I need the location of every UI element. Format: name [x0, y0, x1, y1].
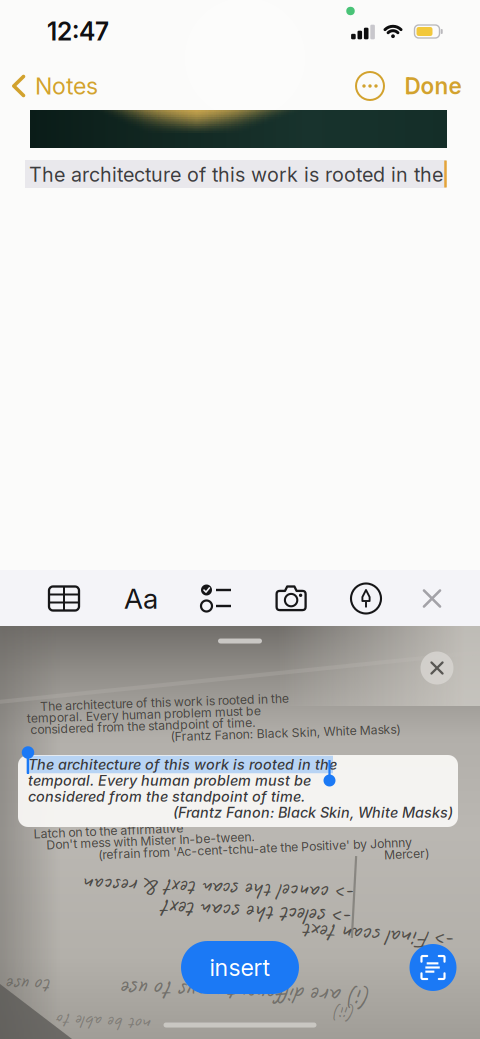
staticText: -> select the scan text: [163, 898, 353, 930]
staticText: Done: [404, 72, 461, 100]
staticText: The architecture of this work is rooted …: [29, 163, 443, 186]
staticText: (i) are different ways to use: [122, 977, 372, 1011]
staticText: temporal. Every human problem must be: [28, 772, 311, 789]
staticText: temporal. Every human problem must be: [27, 705, 261, 719]
staticText: (Frantz Fanon: Black Skin, White Masks): [170, 728, 400, 742]
button[interactable]: Scan text: [408, 942, 458, 992]
staticText: Latch on to the affirmative: [34, 819, 184, 833]
button[interactable]: Done: [398, 69, 468, 103]
staticText: 12:47: [47, 17, 109, 46]
button[interactable]: Markup: [344, 576, 388, 620]
button[interactable]: Camera: [269, 576, 313, 620]
staticText: Notes: [35, 72, 98, 100]
staticText: (refrain from 'Ac-cent-tchu-ate the Posi…: [98, 842, 412, 857]
button[interactable]: Checklist: [194, 576, 238, 620]
button[interactable]: insert: [181, 941, 299, 994]
staticText: to use: [8, 972, 52, 1000]
button[interactable]: Close: [410, 576, 454, 620]
staticText: The architecture of this work is rooted …: [40, 693, 289, 708]
staticText: -> cancel the scan text & rescan: [84, 875, 355, 905]
staticText: Mercer): [383, 854, 428, 868]
button[interactable]: Close camera: [417, 648, 457, 688]
staticText: (Frantz Fanon: Black Skin, White Masks): [173, 804, 453, 821]
staticText: Aa: [124, 582, 158, 615]
button[interactable]: Back: [12, 69, 112, 103]
staticText: The architecture of this work is rooted …: [28, 756, 337, 773]
button[interactable]: More: [354, 70, 386, 102]
staticText: not be able to: [57, 1010, 152, 1036]
staticText: Don't mess with Mister In-be-tween.: [46, 830, 255, 845]
button[interactable]: Insert table: [42, 576, 86, 620]
staticText: -> Final scan text: [304, 921, 455, 953]
button[interactable]: Format: [119, 576, 163, 620]
staticText: considered from the standpoint of time.: [28, 788, 305, 805]
staticText: insert: [209, 953, 270, 982]
staticText: (ii): [334, 1000, 356, 1026]
staticText: considered from the standpoint of time.: [30, 716, 256, 731]
